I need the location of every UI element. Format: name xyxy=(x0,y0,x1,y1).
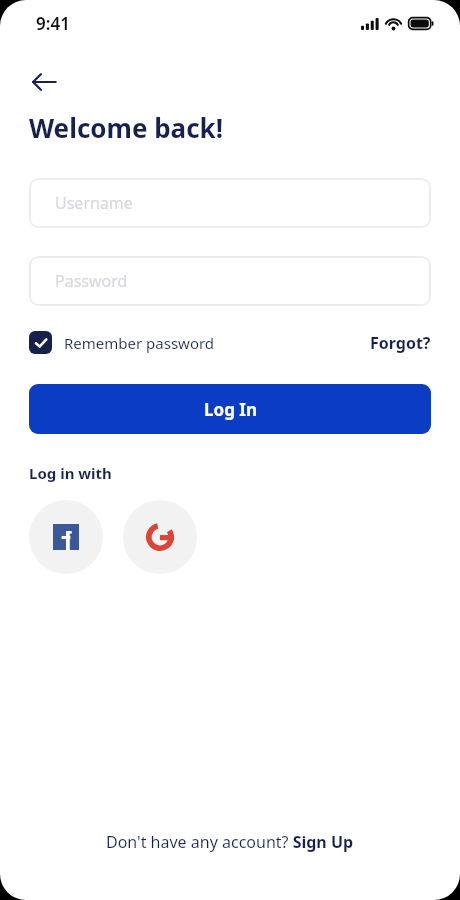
button[interactable]: Log in with Facebook xyxy=(29,500,103,574)
button[interactable]: Password xyxy=(29,256,431,306)
staticText: Remember password xyxy=(64,333,215,353)
button[interactable]: Remember password xyxy=(29,331,215,354)
staticText: Username xyxy=(55,192,133,214)
staticText: Log In xyxy=(204,398,257,421)
button[interactable]: Back xyxy=(22,60,66,104)
staticText: Welcome back! xyxy=(29,110,224,145)
button[interactable]: Username xyxy=(29,178,431,228)
staticText: Log in with xyxy=(29,463,112,483)
staticText: Don't have any account? Sign Up xyxy=(106,831,354,853)
button[interactable]: Forgot? xyxy=(370,332,431,354)
staticText: Forgot? xyxy=(370,332,431,354)
button[interactable]: Log in with Google xyxy=(123,500,197,574)
button[interactable]: Don't have any account? Sign Up xyxy=(106,831,354,853)
staticText: Password xyxy=(55,270,128,292)
button[interactable]: Log In xyxy=(29,384,431,434)
staticText: 9:41 xyxy=(36,12,70,35)
